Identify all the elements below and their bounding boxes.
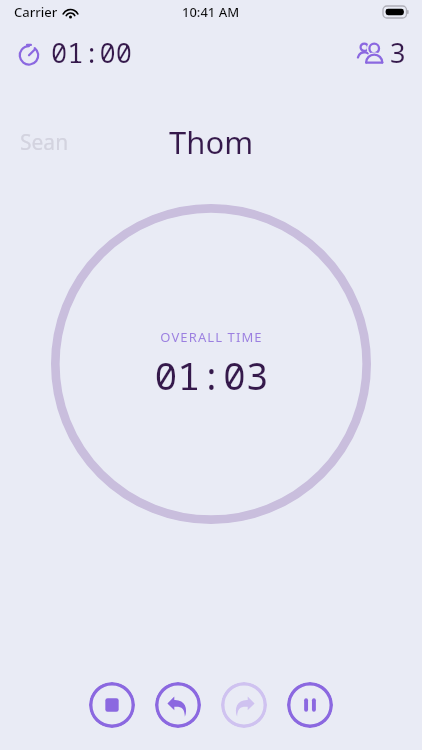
staticText: 3 xyxy=(390,34,406,71)
button[interactable]: Pause xyxy=(287,682,333,728)
other: Players xyxy=(355,41,386,65)
staticText: Carrier xyxy=(14,3,58,21)
staticText: 01:03 xyxy=(154,349,269,401)
other: Round duration xyxy=(16,40,42,66)
button[interactable]: Next player xyxy=(221,682,267,728)
staticText: Thom xyxy=(169,121,254,163)
staticText: 10:41 AM xyxy=(182,3,240,21)
staticText: 01:00 xyxy=(51,34,132,71)
button[interactable]: Sean xyxy=(20,128,69,157)
button[interactable]: Stop xyxy=(89,682,135,728)
button[interactable]: Round duration xyxy=(16,34,132,71)
button[interactable]: Previous player xyxy=(155,682,201,728)
staticText: OVERALL TIME xyxy=(160,328,263,346)
button[interactable]: Players xyxy=(355,34,406,71)
